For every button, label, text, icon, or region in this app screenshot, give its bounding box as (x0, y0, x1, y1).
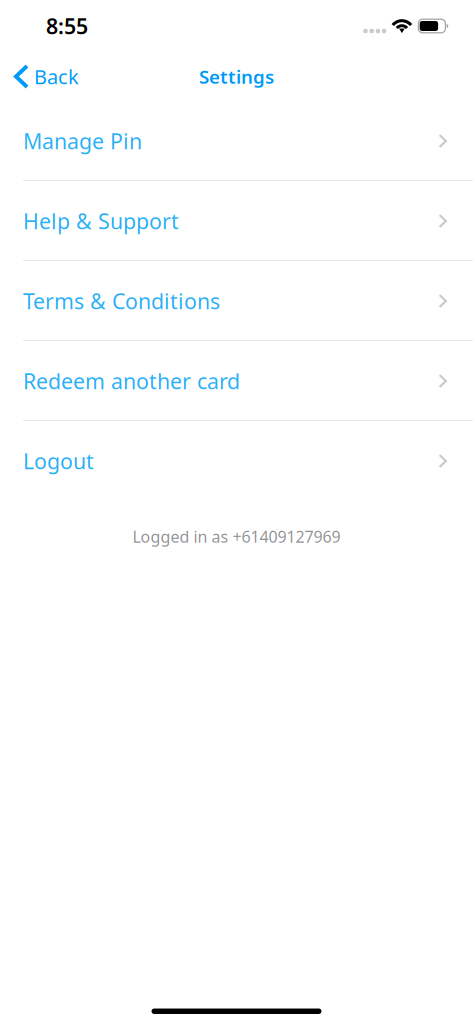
button[interactable]: Manage Pin (0, 101, 473, 181)
button[interactable]: Logout (0, 421, 473, 501)
staticText: Settings (199, 64, 274, 89)
staticText: Back (34, 63, 79, 90)
button[interactable]: Help & Support (0, 181, 473, 261)
staticText: Redeem another card (23, 367, 240, 395)
staticText: Manage Pin (23, 127, 142, 155)
staticText: Help & Support (23, 207, 179, 235)
staticText: Terms & Conditions (23, 287, 220, 315)
staticText: 8:55 (46, 12, 88, 40)
staticText: Logout (23, 447, 94, 475)
button[interactable]: Back (0, 54, 91, 98)
staticText: Logged in as +61409127969 (132, 526, 340, 547)
button[interactable]: Redeem another card (0, 341, 473, 421)
button[interactable]: Terms & Conditions (0, 261, 473, 341)
